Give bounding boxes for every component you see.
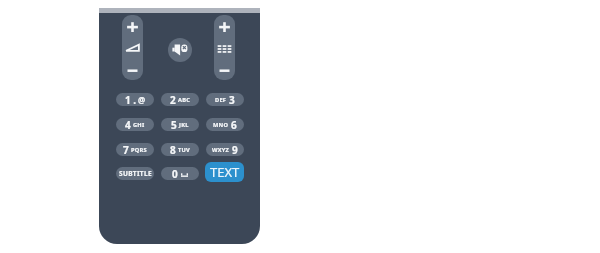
button[interactable]: 5 <box>161 118 199 131</box>
staticText: JKL <box>179 121 189 129</box>
staticText: WXYZ <box>212 146 230 154</box>
staticText: @ <box>138 94 146 105</box>
button[interactable]: 1 . <box>116 93 154 106</box>
button[interactable]: 4 <box>116 118 154 131</box>
button[interactable]: SUBTITLE <box>116 167 154 180</box>
staticText: 1 . <box>125 93 137 106</box>
staticText: PQRS <box>131 146 147 154</box>
staticText: ABC <box>178 96 191 104</box>
button[interactable]: TEXT <box>205 162 244 182</box>
staticText: 2 <box>170 93 176 106</box>
staticText: TEXT <box>210 163 240 181</box>
button[interactable]: DEF <box>206 93 244 106</box>
staticText: MNO <box>213 121 229 129</box>
button[interactable]: WXYZ <box>206 143 244 156</box>
button[interactable]: 8 <box>161 143 199 156</box>
button[interactable]: Channel up and down <box>214 15 235 80</box>
staticText: 3 <box>229 93 235 106</box>
button[interactable]: Volume up and down <box>122 15 143 80</box>
staticText: 9 <box>232 143 238 156</box>
staticText: 8 <box>170 143 176 156</box>
staticText: 5 <box>171 118 177 131</box>
button[interactable]: 0 <box>161 167 199 180</box>
staticText: 0 <box>172 167 178 180</box>
button[interactable]: MNO <box>206 118 244 131</box>
button[interactable]: 7 <box>116 143 154 156</box>
staticText: TUV <box>178 146 191 154</box>
staticText: 7 <box>123 143 129 156</box>
staticText: 6 <box>231 118 237 131</box>
button[interactable]: 2 <box>161 93 199 106</box>
staticText: GHI <box>133 121 145 129</box>
staticText: 4 <box>125 118 131 131</box>
staticText: SUBTITLE <box>119 169 152 178</box>
staticText: DEF <box>215 96 227 104</box>
button[interactable]: Mute <box>168 38 192 62</box>
